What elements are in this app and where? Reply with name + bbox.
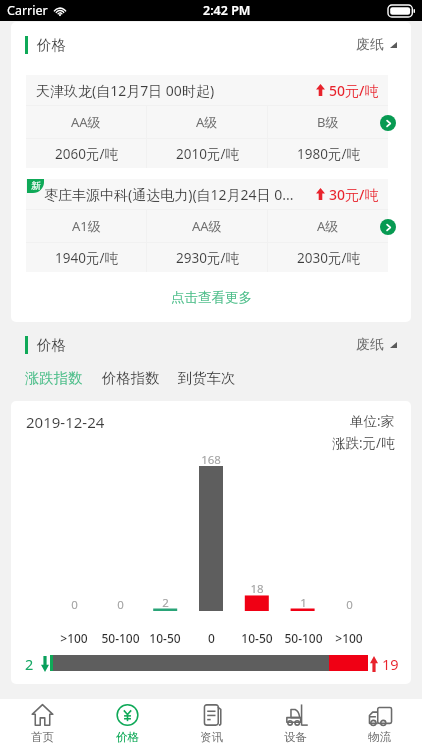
staticText: 10-50 bbox=[149, 630, 181, 646]
button[interactable]: 首页 bbox=[0, 699, 85, 750]
staticText: 资讯 bbox=[200, 730, 224, 745]
staticText: 30元/吨 bbox=[329, 185, 379, 204]
staticText: A1级 bbox=[72, 217, 101, 235]
staticText: 1980元/吨 bbox=[297, 145, 360, 163]
staticText: 物流 bbox=[368, 730, 392, 745]
staticText: 2010元/吨 bbox=[176, 145, 239, 163]
staticText: 价格 bbox=[116, 730, 140, 745]
staticText: 2 bbox=[162, 595, 169, 611]
staticText: 18 bbox=[250, 581, 264, 597]
button[interactable]: 设备 bbox=[254, 699, 338, 750]
staticText: 0 bbox=[208, 630, 215, 646]
staticText: 0 bbox=[346, 597, 353, 613]
staticText: 10-50 bbox=[241, 630, 273, 646]
staticText: 单位:家 bbox=[350, 412, 395, 430]
button[interactable]: 废纸 bbox=[356, 336, 397, 354]
staticText: 设备 bbox=[284, 730, 308, 745]
staticText: 到货车次 bbox=[178, 369, 236, 387]
staticText: Carrier bbox=[7, 2, 48, 19]
staticText: B级 bbox=[317, 113, 339, 131]
staticText: 1 bbox=[300, 595, 307, 611]
staticText: A级 bbox=[317, 217, 339, 235]
staticText: 2 bbox=[25, 654, 34, 674]
staticText: 2930元/吨 bbox=[176, 249, 239, 267]
staticText: 168 bbox=[201, 452, 221, 468]
staticText: 2:42 PM bbox=[203, 2, 251, 19]
staticText: 2060元/吨 bbox=[55, 145, 118, 163]
button[interactable]: 天津玖龙(自12月7日 00时起) bbox=[26, 75, 388, 168]
button[interactable]: 查看详情 bbox=[380, 219, 396, 235]
staticText: 1940元/吨 bbox=[55, 249, 118, 267]
staticText: >100 bbox=[335, 630, 363, 646]
staticText: 2019-12-24 bbox=[26, 412, 105, 432]
button[interactable]: 物流 bbox=[338, 699, 422, 750]
staticText: 涨跌:元/吨 bbox=[332, 434, 395, 452]
button[interactable]: 废纸 bbox=[356, 36, 397, 54]
staticText: 点击查看更多 bbox=[171, 289, 252, 306]
staticText: 新 bbox=[31, 180, 41, 192]
button[interactable]: 涨跌指数 bbox=[25, 369, 83, 387]
staticText: 2030元/吨 bbox=[297, 249, 360, 267]
button[interactable]: 到货车次 bbox=[178, 369, 236, 387]
staticText: A级 bbox=[196, 113, 218, 131]
button[interactable]: 点击查看更多 bbox=[11, 272, 411, 322]
button[interactable]: 资讯 bbox=[170, 699, 254, 750]
staticText: 涨跌指数 bbox=[25, 369, 83, 387]
button[interactable]: 价格 bbox=[85, 699, 170, 750]
button[interactable]: 价格指数 bbox=[102, 369, 160, 387]
staticText: AA级 bbox=[192, 217, 222, 235]
staticText: 19 bbox=[382, 654, 399, 674]
staticText: 50-100 bbox=[101, 630, 140, 646]
staticText: 天津玖龙(自12月7日 00时起) bbox=[36, 81, 215, 100]
staticText: 价格 bbox=[37, 336, 66, 354]
staticText: 废纸 bbox=[356, 36, 384, 54]
staticText: >100 bbox=[60, 630, 88, 646]
button[interactable]: 枣庄丰源中科(通达电力)(自12月24日 0... bbox=[26, 179, 388, 272]
staticText: 枣庄丰源中科(通达电力)(自12月24日 0... bbox=[44, 185, 294, 204]
staticText: AA级 bbox=[71, 113, 101, 131]
staticText: 50元/吨 bbox=[329, 81, 379, 100]
staticText: 0 bbox=[71, 597, 78, 613]
staticText: 价格指数 bbox=[102, 369, 160, 387]
staticText: 价格 bbox=[37, 36, 66, 54]
staticText: 废纸 bbox=[356, 336, 384, 354]
button[interactable]: 查看详情 bbox=[380, 115, 396, 131]
staticText: 0 bbox=[117, 597, 124, 613]
staticText: 首页 bbox=[31, 730, 55, 745]
staticText: 50-100 bbox=[284, 630, 323, 646]
